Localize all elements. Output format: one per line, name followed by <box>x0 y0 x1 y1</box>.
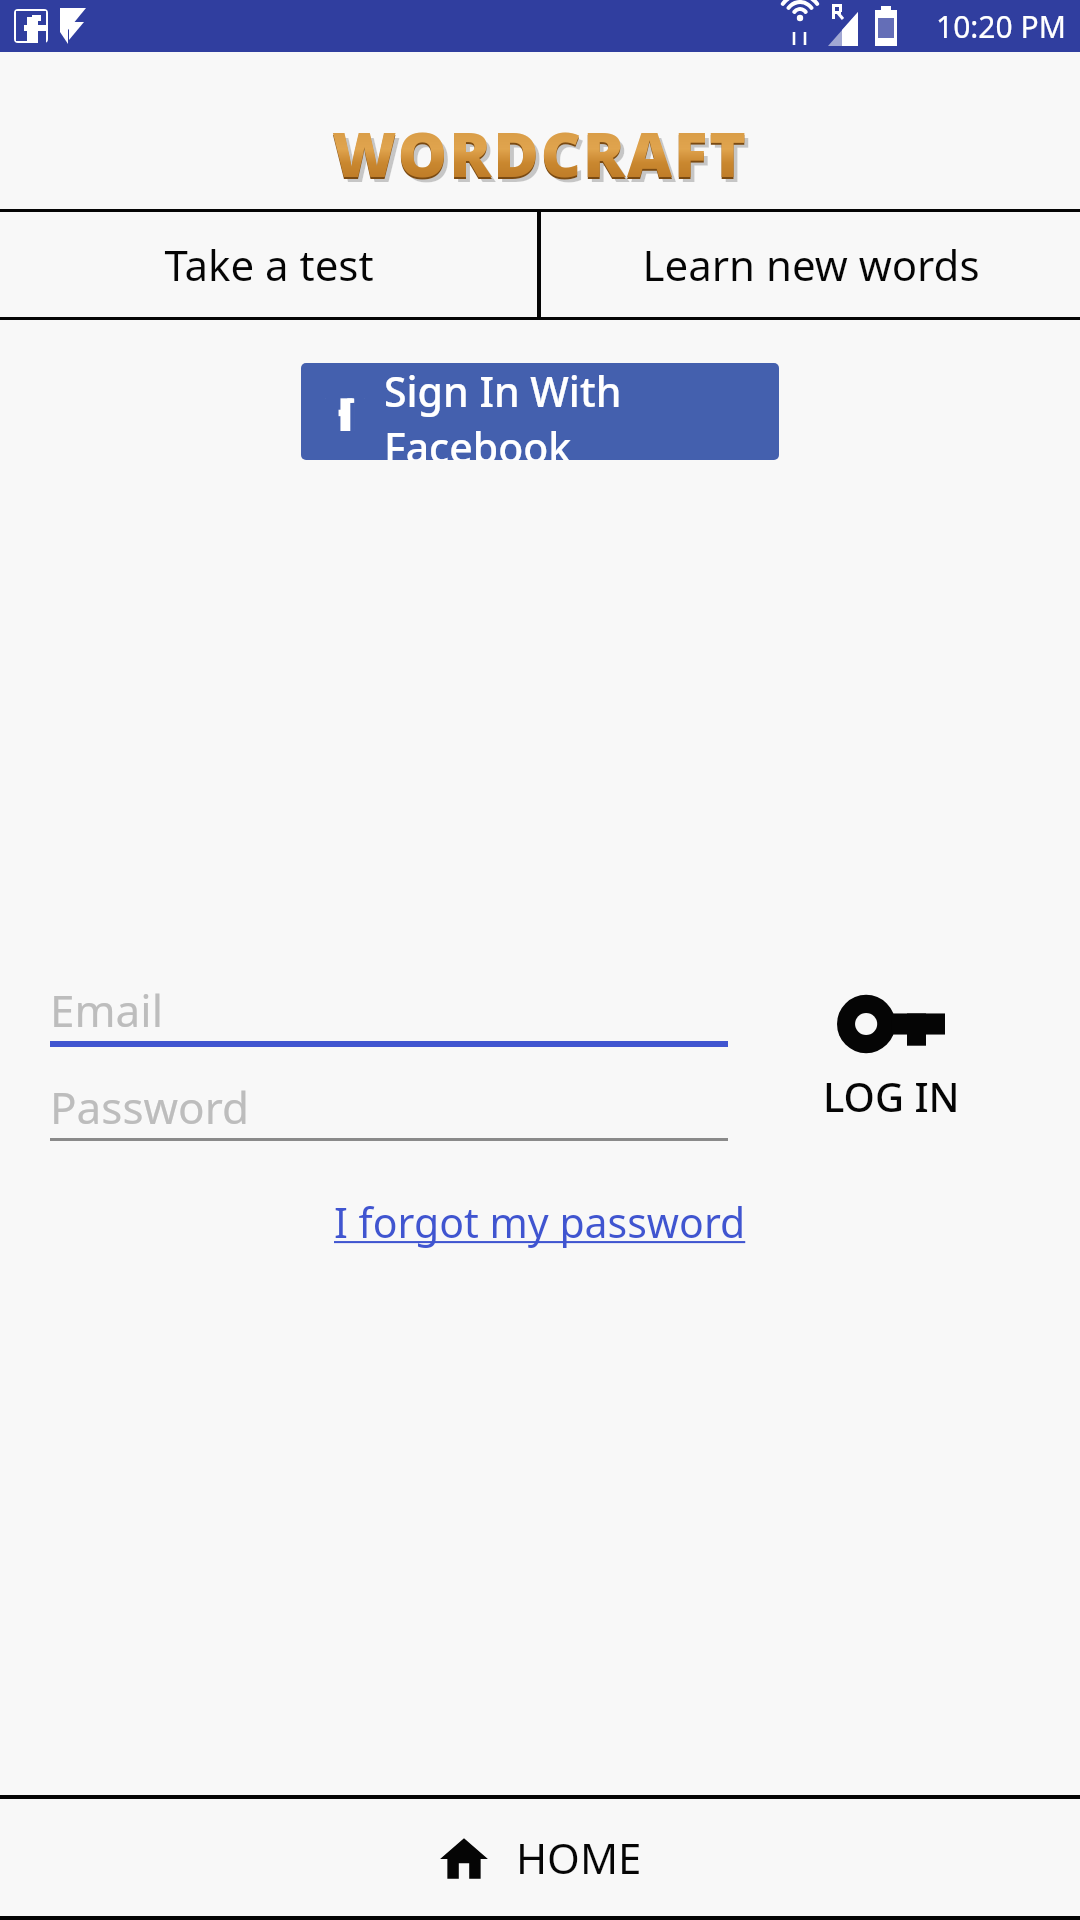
button[interactable]: LOG IN <box>766 979 1016 1123</box>
staticText: Password <box>50 1077 250 1137</box>
staticText: 10:20 PM <box>936 6 1066 47</box>
button[interactable]: Home <box>0 1799 1080 1916</box>
staticText: Take a test <box>164 236 374 293</box>
button[interactable]: Email <box>50 979 728 1049</box>
staticText: WORDCRAFT <box>332 111 748 181</box>
other: Home <box>438 1832 490 1884</box>
staticText: Sign In With Facebook <box>384 363 779 460</box>
staticText: Learn new words <box>642 236 980 293</box>
staticText: WORDCRAFT <box>336 116 752 186</box>
staticText: Email <box>50 980 163 1040</box>
button[interactable]: Learn new words <box>541 212 1080 317</box>
button[interactable]: Sign In With Facebook <box>301 363 779 460</box>
staticText: WORDCRAFT <box>332 113 748 183</box>
button[interactable]: Password <box>50 1076 728 1146</box>
staticText: LOG IN <box>823 1069 960 1123</box>
button[interactable]: Take a test <box>0 212 537 317</box>
staticText: HOME <box>516 1829 642 1886</box>
button[interactable]: I forgot my password <box>334 1194 746 1250</box>
